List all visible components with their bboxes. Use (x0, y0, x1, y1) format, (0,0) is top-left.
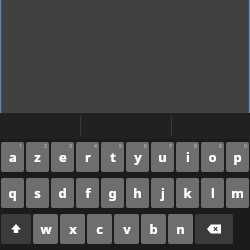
button[interactable]: a (1, 142, 24, 172)
staticText: p (233, 148, 242, 166)
button[interactable]: k (176, 178, 199, 208)
staticText: a (9, 148, 17, 166)
button[interactable]: c (87, 214, 112, 244)
button[interactable]: m (226, 178, 249, 208)
staticText: u (158, 148, 167, 166)
button[interactable]: t (101, 142, 124, 172)
staticText: i (186, 148, 190, 166)
button[interactable]: h (126, 178, 149, 208)
staticText: 7 (169, 143, 172, 150)
staticText: 6 (144, 143, 147, 150)
button[interactable]: y (126, 142, 149, 172)
staticText: q (8, 184, 17, 202)
staticText: n (176, 220, 185, 238)
button[interactable]: v (114, 214, 139, 244)
staticText: 3 (69, 143, 72, 150)
staticText: s (34, 184, 41, 202)
staticText: k (183, 184, 192, 202)
staticText: o (208, 148, 217, 166)
staticText: r (85, 148, 91, 166)
staticText: t (110, 148, 116, 166)
button[interactable]: q (1, 178, 24, 208)
button[interactable]: u (151, 142, 174, 172)
staticText: 0 (244, 143, 247, 150)
staticText: b (149, 220, 158, 238)
staticText: v (123, 220, 131, 238)
staticText: 9 (219, 143, 222, 150)
button[interactable]: w (33, 214, 58, 244)
staticText: 1 (19, 143, 22, 150)
staticText: 4 (94, 143, 97, 150)
staticText: f (85, 184, 91, 202)
staticText: w (40, 220, 52, 238)
button[interactable]: d (51, 178, 74, 208)
button[interactable]: n (168, 214, 193, 244)
button[interactable]: z (26, 142, 49, 172)
staticText: m (231, 184, 244, 202)
button[interactable]: l (201, 178, 224, 208)
button[interactable]: j (151, 178, 174, 208)
button[interactable]: e (51, 142, 74, 172)
staticText: e (59, 148, 67, 166)
button[interactable]: f (76, 178, 99, 208)
staticText: h (133, 184, 142, 202)
button[interactable]: i (176, 142, 199, 172)
button[interactable]: x (60, 214, 85, 244)
staticText: 2 (44, 143, 47, 150)
staticText: c (96, 220, 103, 238)
staticText: z (34, 148, 41, 166)
button[interactable]: o (201, 142, 224, 172)
staticText: g (108, 184, 117, 202)
staticText: y (134, 148, 142, 166)
button[interactable]: r (76, 142, 99, 172)
button[interactable]: Shift (1, 214, 31, 244)
staticText: 8 (194, 143, 197, 150)
button[interactable]: Backspace (195, 214, 233, 244)
staticText: d (58, 184, 67, 202)
staticText: j (161, 184, 165, 202)
button[interactable]: p (226, 142, 249, 172)
button[interactable]: b (141, 214, 166, 244)
staticText: 5 (119, 143, 122, 150)
staticText: l (211, 184, 215, 202)
button[interactable]: s (26, 178, 49, 208)
staticText: x (69, 220, 77, 238)
button[interactable]: g (101, 178, 124, 208)
button[interactable] (0, 0, 250, 121)
